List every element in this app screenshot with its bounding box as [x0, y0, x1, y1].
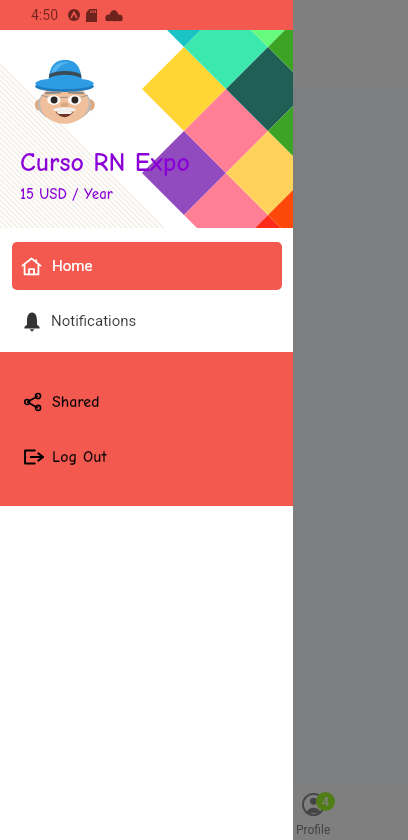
staticText: Shared	[52, 393, 100, 411]
button[interactable]: Shared	[0, 378, 293, 426]
staticText: Profile	[296, 823, 331, 837]
button[interactable]: Home	[12, 242, 282, 290]
button[interactable]: Notifications	[0, 290, 293, 352]
staticText: Log Out	[52, 448, 107, 466]
staticText: 4:50	[31, 7, 58, 23]
button[interactable]: Log Out	[0, 433, 293, 481]
button[interactable]: 4	[268, 788, 358, 840]
staticText: Home	[52, 257, 93, 275]
staticText: Curso RN Expo	[20, 148, 190, 178]
staticText: Notifications	[51, 312, 137, 330]
staticText: 15 USD / Year	[20, 185, 113, 202]
staticText: 4	[322, 795, 329, 809]
